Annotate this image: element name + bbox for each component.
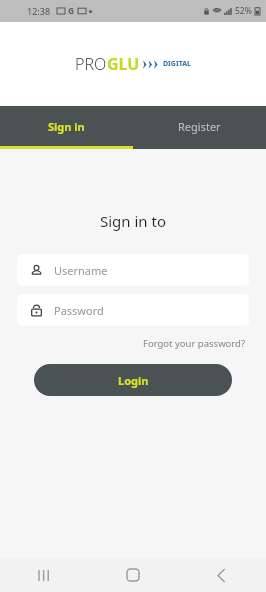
button[interactable]: Register — [133, 106, 266, 146]
staticText: Login — [118, 373, 149, 388]
staticText: Username — [54, 263, 108, 278]
button[interactable]: Forgot your password? — [141, 335, 248, 352]
button[interactable]: Password — [17, 294, 249, 326]
staticText: PRO — [75, 53, 107, 75]
button[interactable]: Recent apps — [0, 558, 88, 592]
staticText: G — [68, 5, 75, 17]
staticText: Forgot your password? — [143, 337, 246, 350]
staticText: Password — [54, 303, 104, 318]
staticText: Sign in to — [0, 211, 266, 231]
staticText: DIGITAL — [163, 59, 191, 69]
staticText: Sign in — [48, 119, 85, 134]
button[interactable]: Back — [177, 558, 266, 592]
button[interactable]: Username — [17, 254, 249, 286]
staticText: 12:38 — [27, 5, 51, 17]
staticText: Register — [178, 119, 221, 134]
button[interactable]: Login — [34, 364, 232, 396]
staticText: 52% — [235, 5, 252, 17]
button[interactable]: Home — [88, 558, 177, 592]
button[interactable]: Sign in — [0, 106, 133, 146]
staticText: GLU — [107, 53, 140, 75]
